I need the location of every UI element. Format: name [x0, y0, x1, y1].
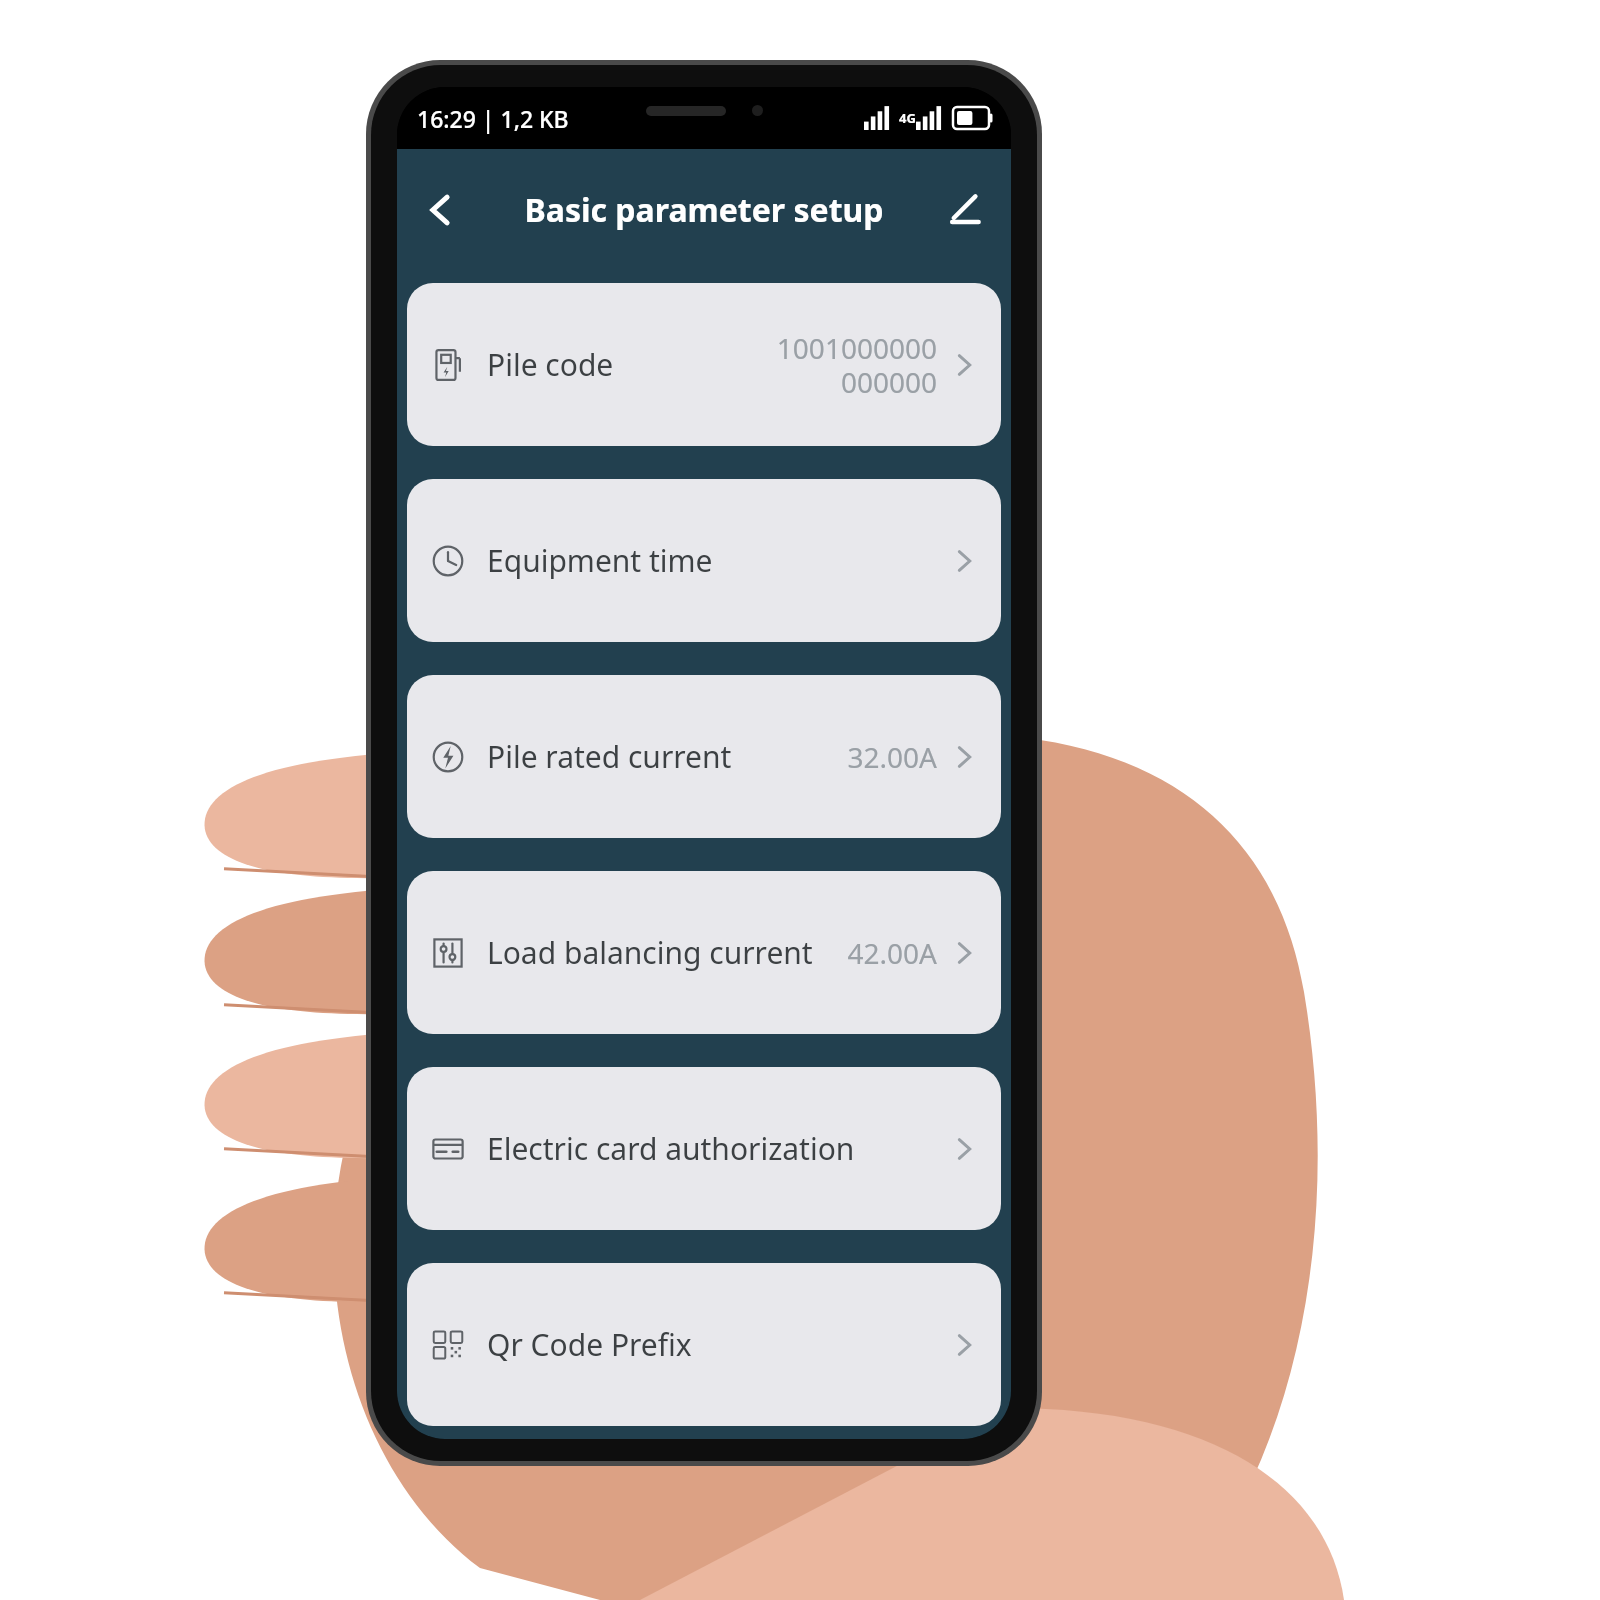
staticText: 16:29 | 1,2 KB [417, 103, 569, 134]
staticText: 1001000000 000000 [776, 329, 937, 401]
button[interactable]: Equipment time [407, 479, 1001, 642]
button[interactable]: Pile rated current [407, 675, 1001, 838]
staticText: 42.00A [847, 934, 937, 972]
button[interactable]: Pile code [407, 283, 1001, 446]
button[interactable]: Back [405, 174, 477, 246]
staticText: Pile code [487, 344, 614, 385]
button[interactable]: Qr Code Prefix [407, 1263, 1001, 1426]
staticText: Basic parameter setup [524, 188, 884, 232]
staticText: Pile rated current [487, 736, 732, 777]
staticText: 32.00A [847, 738, 937, 776]
staticText: Electric card authorization [487, 1128, 855, 1169]
button[interactable]: Electric card authorization [407, 1067, 1001, 1230]
button[interactable]: Edit [929, 174, 1001, 246]
staticText: Load balancing current [487, 932, 813, 973]
staticText: Qr Code Prefix [487, 1324, 692, 1365]
staticText: 4G [899, 109, 916, 127]
staticText: Equipment time [487, 540, 713, 581]
button[interactable]: Load balancing current [407, 871, 1001, 1034]
